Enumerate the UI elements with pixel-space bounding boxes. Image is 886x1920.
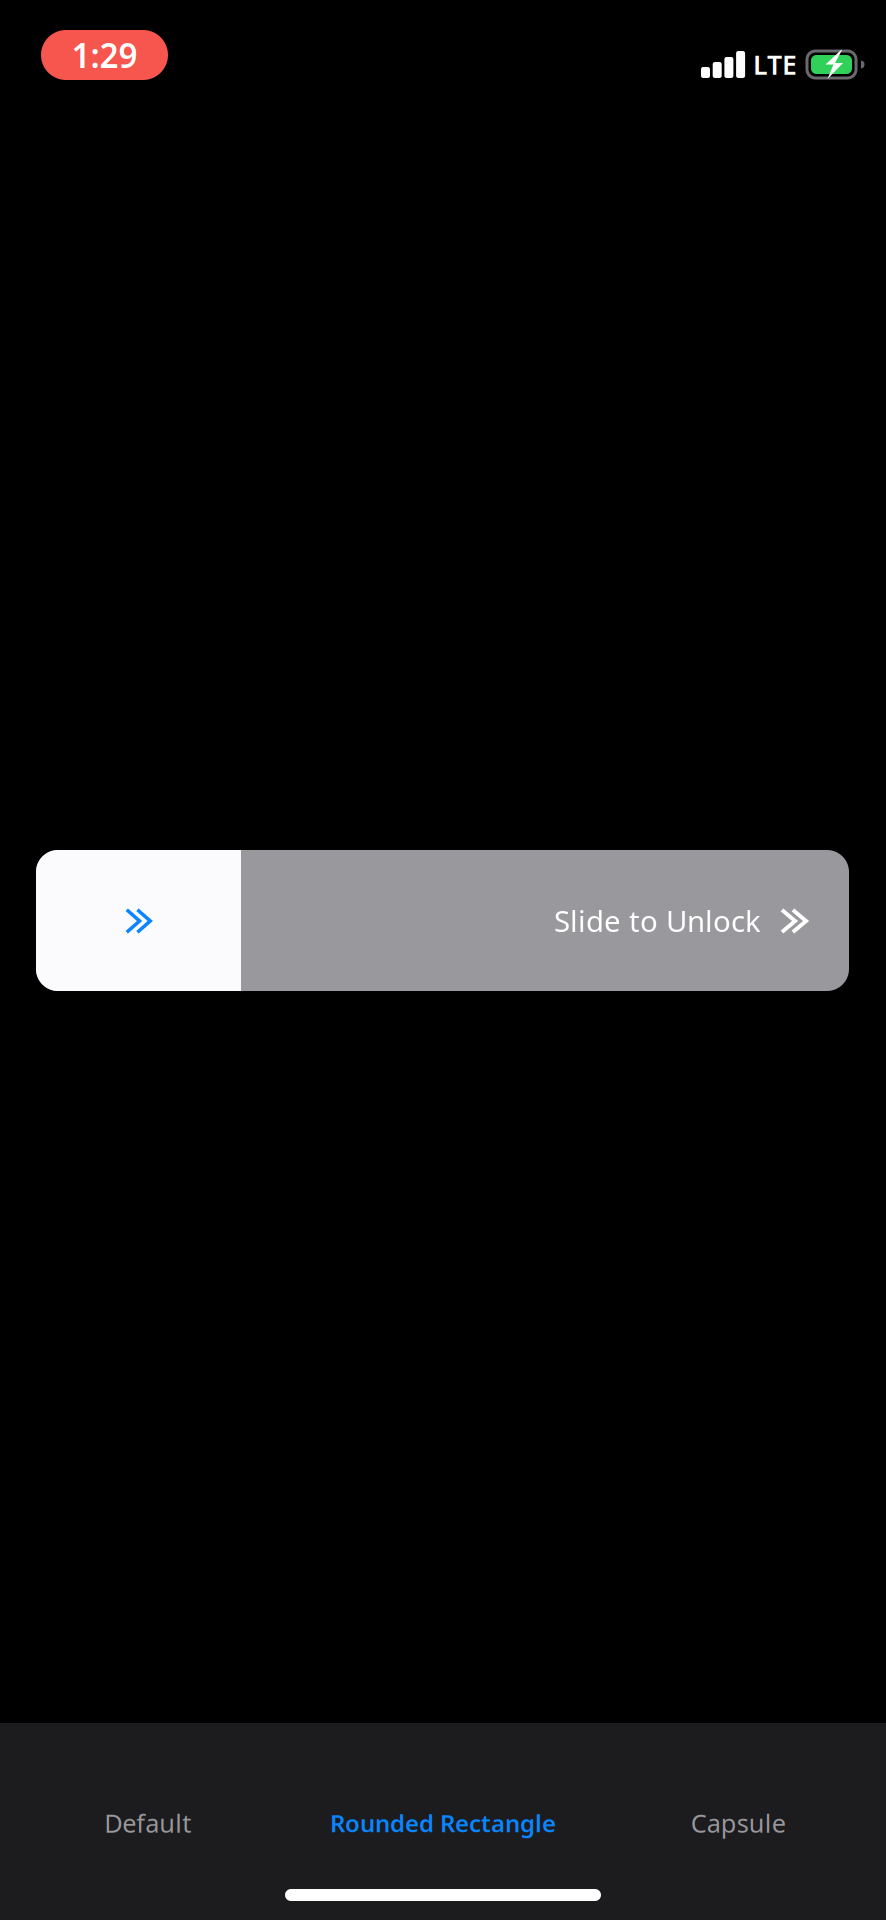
staticText: Capsule — [691, 1806, 786, 1840]
button[interactable]: Rounded Rectangle — [295, 1781, 591, 1865]
button[interactable]: Slide to Unlock — [36, 850, 849, 991]
staticText: LTE — [753, 47, 797, 82]
staticText: 1:29 — [71, 33, 137, 77]
button[interactable]: Default — [0, 1781, 295, 1865]
staticText: Default — [104, 1806, 191, 1840]
staticText: Slide to Unlock — [554, 901, 761, 940]
staticText: Rounded Rectangle — [330, 1807, 556, 1839]
button[interactable]: Capsule — [591, 1781, 886, 1865]
